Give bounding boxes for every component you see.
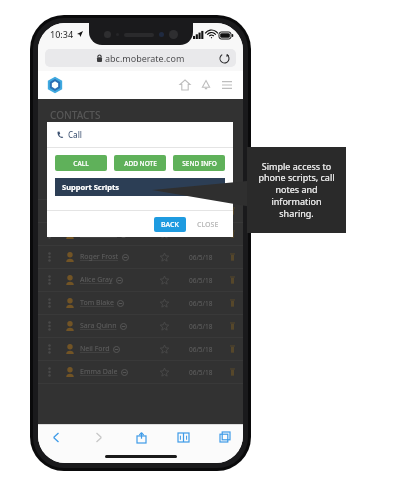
button[interactable]: Peter Shaw <box>38 223 243 245</box>
button[interactable]: Neil Ford <box>38 338 243 360</box>
staticText: Sara Quinn <box>80 321 117 331</box>
staticText: ADD NOTE <box>124 159 157 168</box>
button[interactable]: Notifications <box>198 77 214 93</box>
button[interactable]: Groups <box>176 129 201 149</box>
button[interactable]: Reload <box>218 52 230 64</box>
staticText: Support Scripts <box>62 182 120 192</box>
staticText: 10:34 <box>50 28 74 40</box>
button[interactable]: Contacts <box>55 129 84 149</box>
button[interactable]: CLOSE <box>192 217 224 232</box>
button[interactable]: Sara Quinn <box>38 315 243 337</box>
staticText: Marcus Reid <box>80 183 121 193</box>
button[interactable]: Favourites <box>98 129 133 149</box>
button[interactable]: BACK <box>154 217 186 232</box>
staticText: Tom Blake <box>80 298 114 308</box>
button[interactable]: Marcus Reid <box>38 177 243 199</box>
button[interactable]: Support Scripts <box>55 178 225 196</box>
staticText: CLOSE <box>197 220 219 230</box>
staticText: 06/5/18 <box>189 253 213 262</box>
staticText: Neil Ford <box>80 344 110 354</box>
button[interactable]: Emma Dale <box>38 361 243 383</box>
staticText: Peter Shaw <box>80 229 117 239</box>
staticText: Contacts <box>55 134 84 144</box>
staticText: 06/5/18 <box>189 322 213 331</box>
button[interactable]: Menu <box>219 77 235 93</box>
staticText: 07/5/18 <box>189 207 213 216</box>
button[interactable]: SEND INFO <box>173 155 225 171</box>
staticText: › <box>213 180 218 195</box>
staticText: Emma Dale <box>80 367 118 377</box>
button[interactable]: Tom Blake <box>38 292 243 314</box>
staticText: Call <box>68 129 82 140</box>
staticText: 06/5/18 <box>189 345 213 354</box>
button[interactable]: Logo <box>46 76 64 94</box>
button[interactable]: Tags <box>147 129 162 149</box>
staticText: CONTACTS <box>50 108 101 122</box>
staticText: CALL <box>73 159 89 168</box>
staticText: 06/5/18 <box>189 368 213 377</box>
staticText: Roger Frost <box>80 252 119 262</box>
button[interactable]: Bookmarks <box>175 429 191 445</box>
staticText: SEND INFO <box>182 159 217 168</box>
staticText: Simple access to phone scripts, call not… <box>254 160 339 220</box>
button[interactable]: Forward <box>90 429 106 445</box>
staticText: 06/5/18 <box>189 276 213 285</box>
button[interactable]: CALL <box>55 155 107 171</box>
staticText: 07/5/18 <box>189 184 213 193</box>
button[interactable]: abc.moberate.com <box>45 49 236 67</box>
staticText: 07/5/18 <box>189 230 213 239</box>
button[interactable]: Home <box>177 77 193 93</box>
staticText: abc.moberate.com <box>105 52 185 64</box>
button[interactable]: Jane Lin <box>38 200 243 222</box>
button[interactable] <box>48 156 82 168</box>
button[interactable]: Share <box>133 429 149 445</box>
button[interactable]: Back <box>48 429 64 445</box>
staticText: Alice Gray <box>80 275 113 285</box>
button[interactable]: Tabs <box>217 429 233 445</box>
staticText: Jane Lin <box>80 206 106 216</box>
button[interactable]: ADD NOTE <box>114 155 166 171</box>
staticText: BACK <box>161 220 179 230</box>
staticText: 06/5/18 <box>189 299 213 308</box>
button[interactable]: Alice Gray <box>38 269 243 291</box>
button[interactable]: Roger Frost <box>38 246 243 268</box>
